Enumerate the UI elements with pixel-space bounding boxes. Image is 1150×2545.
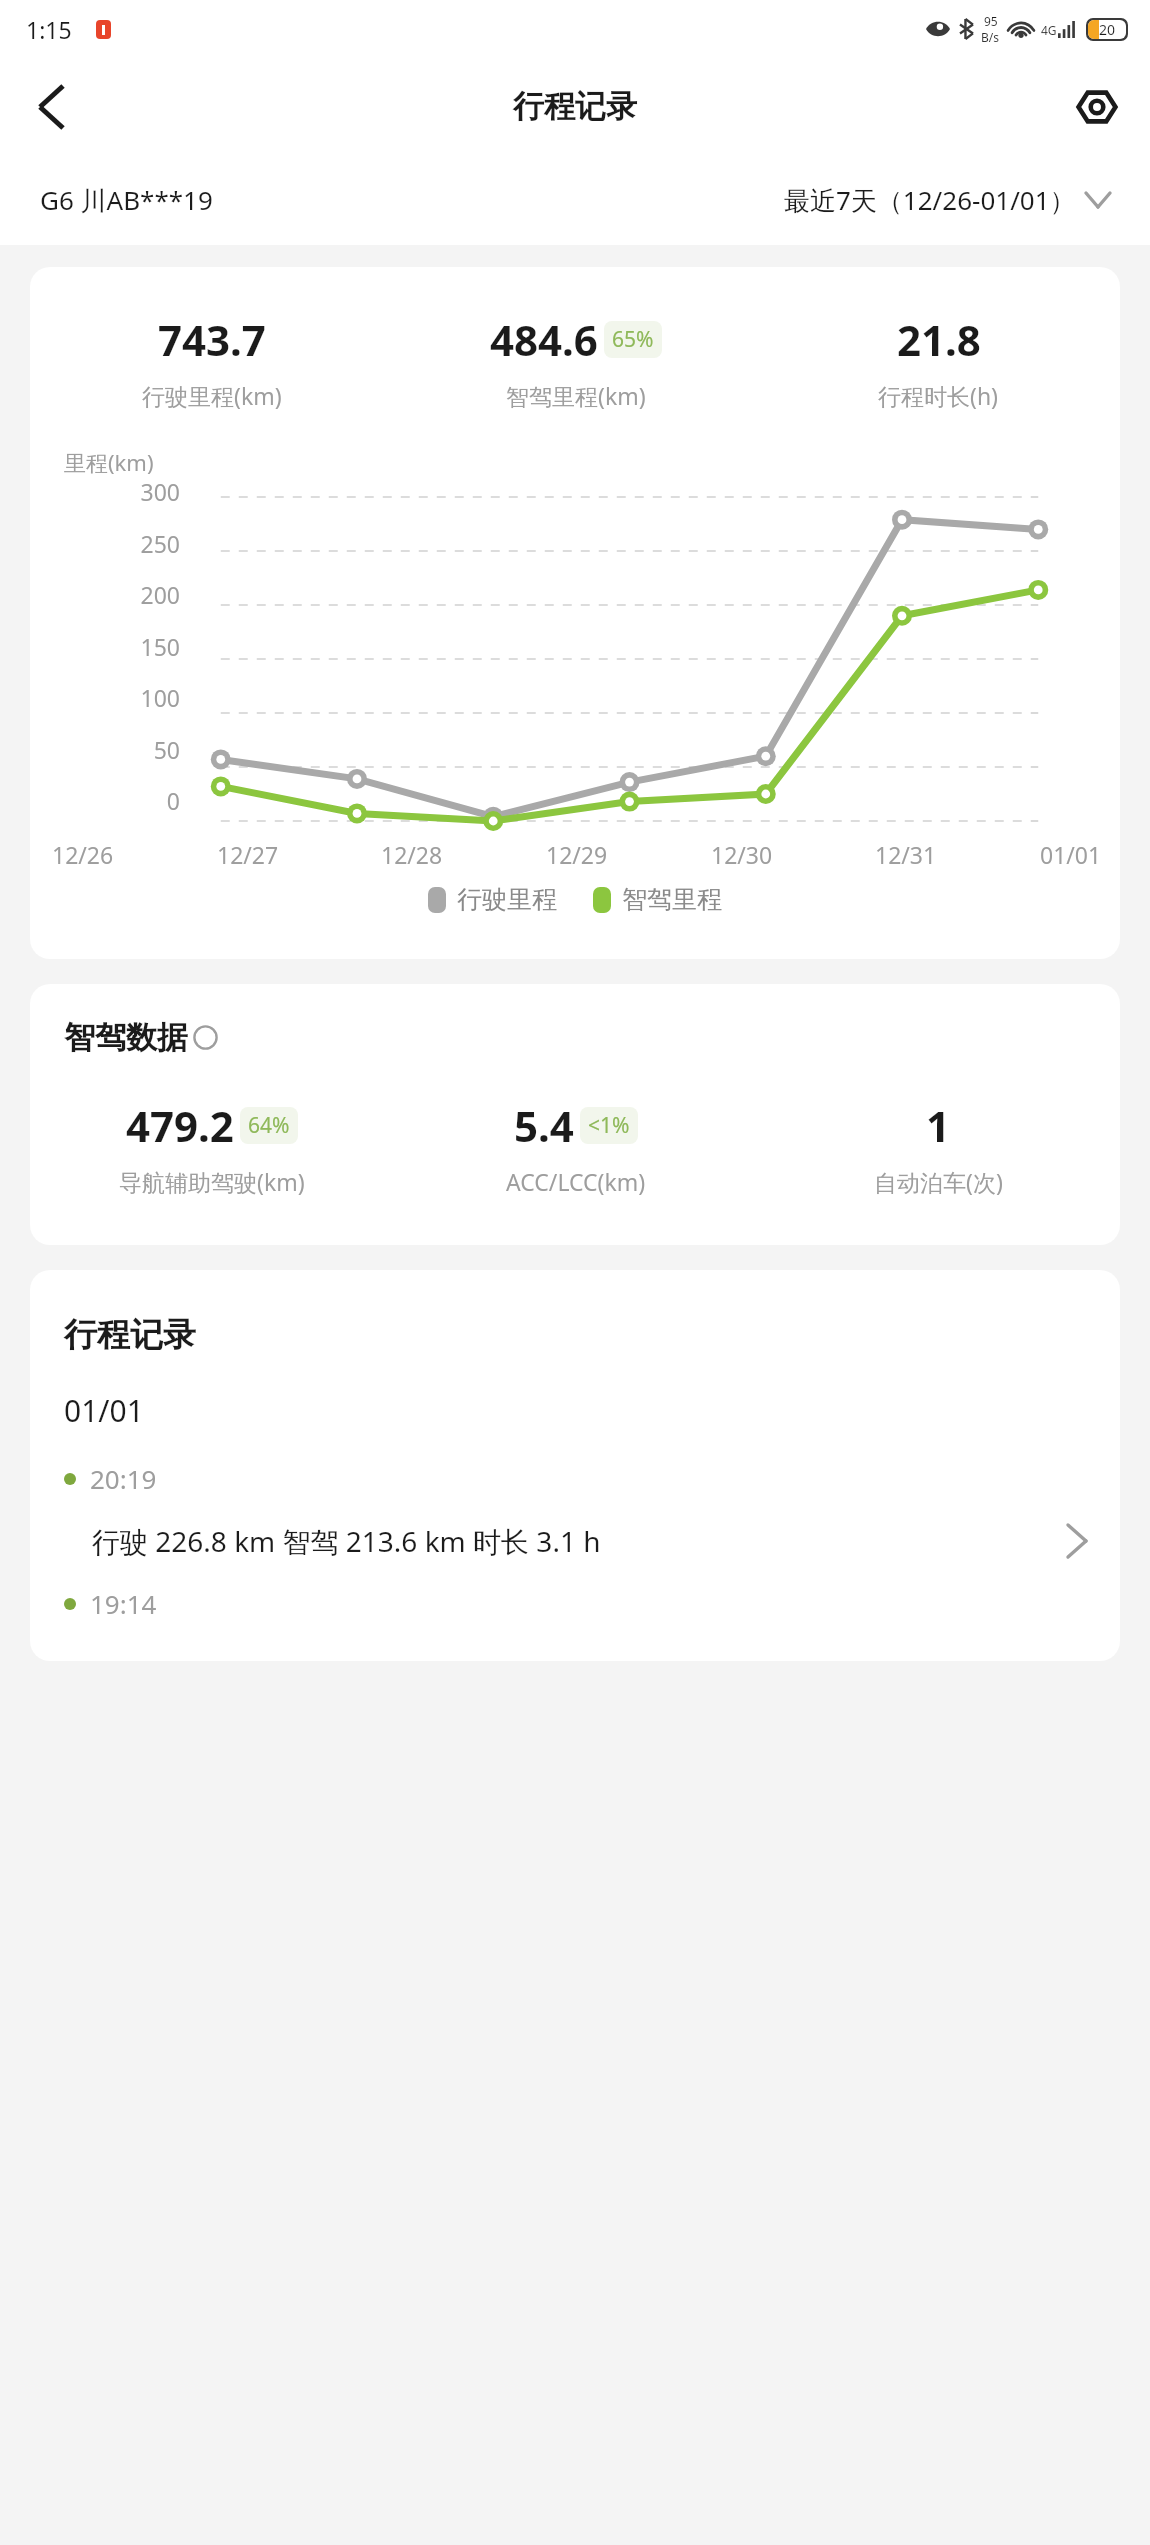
- staticText: 12/28: [381, 839, 443, 870]
- staticText: 12/26: [52, 839, 114, 870]
- staticText: 自动泊车(次): [874, 1166, 1003, 1197]
- button[interactable]: Back: [14, 70, 88, 144]
- staticText: 行驶 226.8 km 智驾 213.6 km 时长 3.1 h: [92, 1522, 1068, 1560]
- staticText: 19:14: [90, 1586, 157, 1621]
- staticText: 12/27: [217, 839, 279, 870]
- staticText: 智驾数据: [64, 1018, 188, 1057]
- staticText: 智驾里程(km): [506, 380, 646, 411]
- button[interactable]: 最近7天（12/26-01/01）: [784, 182, 1110, 218]
- staticText: 300: [140, 476, 180, 507]
- staticText: 01/01: [64, 1390, 144, 1431]
- staticText: B/s: [981, 29, 1000, 45]
- staticText: 65%: [612, 325, 654, 354]
- staticText: 21.8: [897, 311, 981, 368]
- staticText: 479.2: [126, 1097, 234, 1154]
- button[interactable]: 智驾数据: [64, 1018, 218, 1057]
- staticText: 01/01: [1040, 839, 1102, 870]
- staticText: <1%: [588, 1111, 630, 1140]
- staticText: 行程时长(h): [878, 380, 999, 411]
- staticText: 100: [140, 682, 180, 713]
- staticText: 20: [1099, 20, 1116, 39]
- staticText: 12/29: [546, 839, 608, 870]
- staticText: 1: [926, 1097, 951, 1154]
- staticText: 12/30: [711, 839, 773, 870]
- staticText: 最近7天（12/26-01/01）: [784, 182, 1076, 218]
- staticText: 1:15: [26, 14, 72, 45]
- staticText: 95: [984, 13, 998, 29]
- staticText: 250: [140, 528, 180, 559]
- staticText: 里程(km): [64, 447, 154, 477]
- staticText: 行程记录: [64, 1314, 196, 1356]
- staticText: 行驶里程(km): [142, 380, 282, 411]
- staticText: 20:19: [90, 1461, 157, 1496]
- staticText: ACC/LCC(km): [506, 1166, 646, 1197]
- staticText: 0: [166, 785, 180, 816]
- staticText: 4G: [1041, 22, 1057, 38]
- button[interactable]: Settings: [1060, 70, 1134, 144]
- button[interactable]: 智驾里程: [593, 884, 722, 915]
- staticText: 150: [140, 631, 180, 662]
- staticText: 行驶里程: [457, 884, 557, 915]
- staticText: 12/31: [875, 839, 937, 870]
- staticText: 导航辅助驾驶(km): [119, 1166, 305, 1197]
- button[interactable]: G6 川AB***19: [40, 182, 213, 218]
- staticText: 智驾里程: [622, 884, 722, 915]
- staticText: 行程记录: [513, 87, 637, 126]
- staticText: 484.6: [490, 311, 598, 368]
- staticText: 5.4: [514, 1097, 574, 1154]
- staticText: 200: [140, 579, 180, 610]
- button[interactable]: 20:19: [30, 1461, 1120, 1560]
- other: Help: [193, 1025, 218, 1050]
- staticText: 64%: [248, 1111, 290, 1140]
- button[interactable]: 行驶里程: [428, 884, 557, 915]
- staticText: 50: [153, 734, 180, 765]
- staticText: 743.7: [158, 311, 266, 368]
